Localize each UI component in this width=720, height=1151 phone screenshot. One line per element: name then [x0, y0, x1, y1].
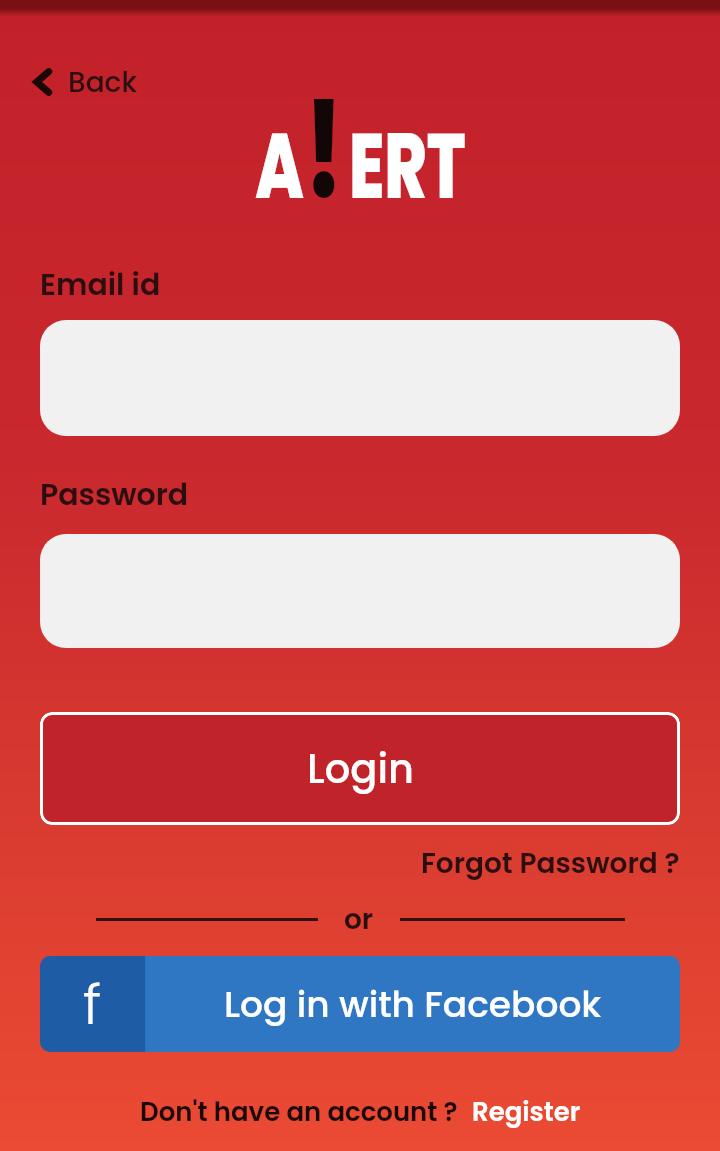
staticText: Log in with Facebook	[224, 979, 602, 1029]
staticText: Don't have an account ?	[140, 1094, 458, 1130]
staticText: Login	[307, 741, 414, 797]
button[interactable]	[40, 320, 680, 436]
staticText: ERT	[349, 101, 466, 230]
button[interactable]: Register	[472, 1094, 581, 1130]
staticText: Email id	[40, 264, 161, 306]
staticText: !	[304, 58, 343, 243]
button[interactable]	[40, 534, 680, 648]
staticText: A	[255, 101, 304, 230]
button[interactable]: Forgot Password ?	[421, 844, 680, 883]
button[interactable]: f	[40, 956, 680, 1052]
staticText: f	[83, 965, 102, 1043]
button[interactable]: Login	[40, 712, 680, 825]
staticText: or	[344, 900, 374, 939]
staticText: Back	[68, 63, 137, 102]
staticText: Password	[40, 474, 189, 516]
button[interactable]: Back	[30, 62, 137, 102]
